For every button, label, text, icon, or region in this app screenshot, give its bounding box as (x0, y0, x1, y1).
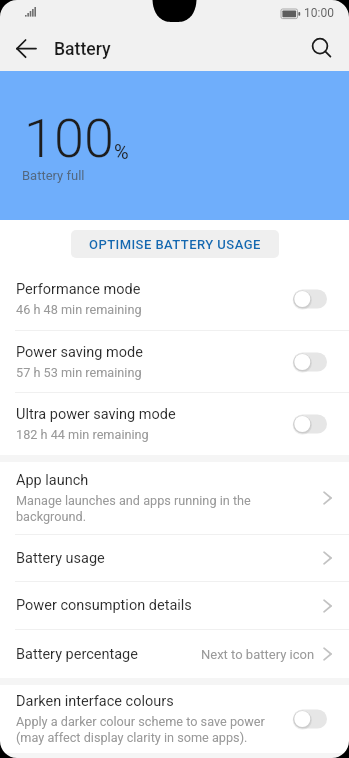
staticText: Battery (54, 39, 111, 60)
button[interactable]: Toggle (293, 412, 327, 436)
staticText: Battery usage (16, 550, 105, 567)
button[interactable]: Battery usage (0, 535, 349, 581)
button[interactable]: Toggle (293, 350, 327, 374)
staticText: Next to battery icon (201, 647, 315, 662)
staticText: 46 h 48 min remaining (16, 302, 142, 317)
button[interactable]: Power saving mode (0, 331, 349, 392)
staticText: 57 h 53 min remaining (16, 365, 142, 380)
button[interactable]: Ultra power saving mode (0, 393, 349, 455)
staticText: App launch (16, 472, 89, 489)
staticText: 182 h 44 min remaining (16, 427, 149, 442)
staticText: 100 (24, 107, 114, 170)
staticText: Apply a darker colour scheme to save pow… (16, 714, 265, 746)
staticText: Ultra power saving mode (16, 406, 176, 423)
staticText: % (114, 140, 129, 163)
button[interactable]: Toggle (293, 287, 327, 311)
staticText: Battery full (22, 168, 85, 183)
button[interactable]: App launch (0, 462, 349, 534)
staticText: OPTIMISE BATTERY USAGE (89, 237, 261, 252)
button[interactable]: Toggle (293, 707, 327, 731)
button[interactable]: Power consumption details (0, 582, 349, 629)
staticText: Power consumption details (16, 597, 192, 614)
staticText: Darken interface colours (16, 693, 174, 710)
staticText: Performance mode (16, 281, 141, 298)
button[interactable]: Back (7, 29, 46, 68)
button[interactable]: Performance mode (0, 268, 349, 330)
staticText: Manage launches and apps running in the … (16, 493, 251, 525)
staticText: 10:00 (304, 6, 334, 20)
button[interactable]: OPTIMISE BATTERY USAGE (71, 230, 279, 258)
staticText: Power saving mode (16, 344, 143, 361)
staticText: Battery percentage (16, 646, 138, 663)
button[interactable]: Darken interface colours (0, 685, 349, 753)
button[interactable]: Battery percentage (0, 630, 349, 678)
button[interactable]: Search (301, 29, 340, 68)
